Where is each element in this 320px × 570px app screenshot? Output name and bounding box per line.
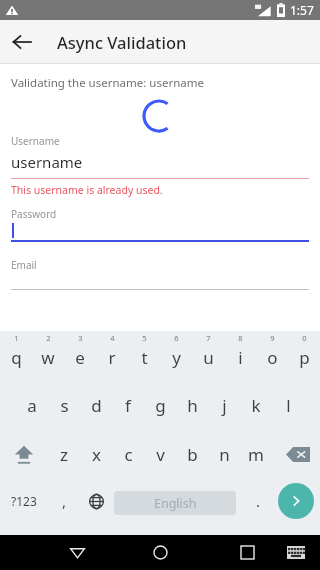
button[interactable]: Backspace	[280, 434, 316, 474]
staticText: 9	[270, 333, 275, 343]
staticText: z	[60, 443, 68, 466]
button[interactable]: v	[144, 434, 176, 474]
button[interactable]: ,	[50, 481, 78, 521]
button[interactable]: h	[176, 384, 208, 426]
staticText: p	[299, 346, 310, 369]
button[interactable]: 4	[96, 333, 128, 381]
staticText: 6	[174, 333, 179, 343]
staticText: b	[187, 443, 198, 466]
staticText: ,	[62, 491, 67, 511]
button[interactable]: 1	[0, 333, 32, 381]
staticText: Email	[11, 258, 37, 272]
button[interactable]: ?123	[2, 481, 46, 521]
button[interactable]: Shift	[4, 434, 44, 474]
button[interactable]: Next	[278, 483, 314, 519]
staticText: username	[11, 152, 83, 172]
staticText: l	[286, 394, 291, 417]
staticText: 1	[14, 333, 19, 343]
button[interactable]: 0	[288, 333, 320, 381]
staticText: q	[11, 346, 22, 369]
button[interactable]: b	[176, 434, 208, 474]
staticText: o	[267, 346, 278, 369]
button[interactable]: k	[240, 384, 272, 426]
staticText: 3	[78, 333, 83, 343]
staticText: ?123	[11, 493, 37, 509]
button[interactable]: x	[80, 434, 112, 474]
button[interactable]: 2	[32, 333, 64, 381]
button[interactable]: 7	[192, 333, 224, 381]
button[interactable]: 3	[64, 333, 96, 381]
staticText: y	[172, 346, 181, 369]
button[interactable]: Back	[52, 535, 102, 570]
staticText: j	[222, 394, 227, 417]
staticText: r	[108, 346, 116, 369]
button[interactable]: a	[16, 384, 48, 426]
staticText: 5	[142, 333, 147, 343]
button[interactable]: Change language	[82, 481, 110, 521]
button[interactable]: English	[114, 491, 236, 515]
staticText: c	[124, 443, 133, 466]
staticText: v	[156, 443, 165, 466]
staticText: 7	[206, 333, 211, 343]
button[interactable]: l	[272, 384, 304, 426]
staticText: g	[155, 394, 166, 417]
staticText: 4	[110, 333, 115, 343]
staticText: Password	[11, 207, 57, 221]
button[interactable]: Recent apps	[222, 535, 272, 570]
button[interactable]: m	[240, 434, 272, 474]
staticText: English	[154, 495, 197, 512]
staticText: h	[187, 394, 198, 417]
staticText: d	[91, 394, 102, 417]
button[interactable]: .	[244, 481, 272, 521]
staticText: This username is already used.	[11, 183, 163, 197]
staticText: 8	[238, 333, 243, 343]
button[interactable]: z	[48, 434, 80, 474]
staticText: 2	[46, 333, 51, 343]
button[interactable]: d	[80, 384, 112, 426]
button[interactable]: n	[208, 434, 240, 474]
staticText: a	[27, 394, 37, 417]
staticText: i	[238, 346, 243, 369]
staticText: w	[41, 346, 55, 369]
button[interactable]: Back	[2, 22, 42, 62]
staticText: 1:57	[290, 2, 314, 18]
button[interactable]: g	[144, 384, 176, 426]
staticText: Validating the username: username	[11, 75, 204, 91]
staticText: Username	[11, 134, 60, 148]
button[interactable]: f	[112, 384, 144, 426]
staticText: k	[251, 394, 261, 417]
button[interactable]: s	[48, 384, 80, 426]
staticText: t	[141, 346, 148, 369]
button[interactable]: c	[112, 434, 144, 474]
staticText: u	[203, 346, 214, 369]
staticText: e	[75, 346, 85, 369]
button[interactable]: 6	[160, 333, 192, 381]
staticText: f	[125, 394, 131, 417]
staticText: Async Validation	[57, 31, 187, 53]
staticText: n	[219, 443, 230, 466]
button[interactable]: Hide keyboard	[276, 535, 316, 570]
staticText: s	[60, 394, 69, 417]
button[interactable]: Home	[135, 535, 185, 570]
staticText: m	[248, 443, 264, 466]
button[interactable]: 5	[128, 333, 160, 381]
button[interactable]: j	[208, 384, 240, 426]
button[interactable]: 8	[224, 333, 256, 381]
staticText: 0	[302, 333, 307, 343]
staticText: .	[256, 491, 261, 511]
staticText: x	[92, 443, 101, 466]
button[interactable]: 9	[256, 333, 288, 381]
